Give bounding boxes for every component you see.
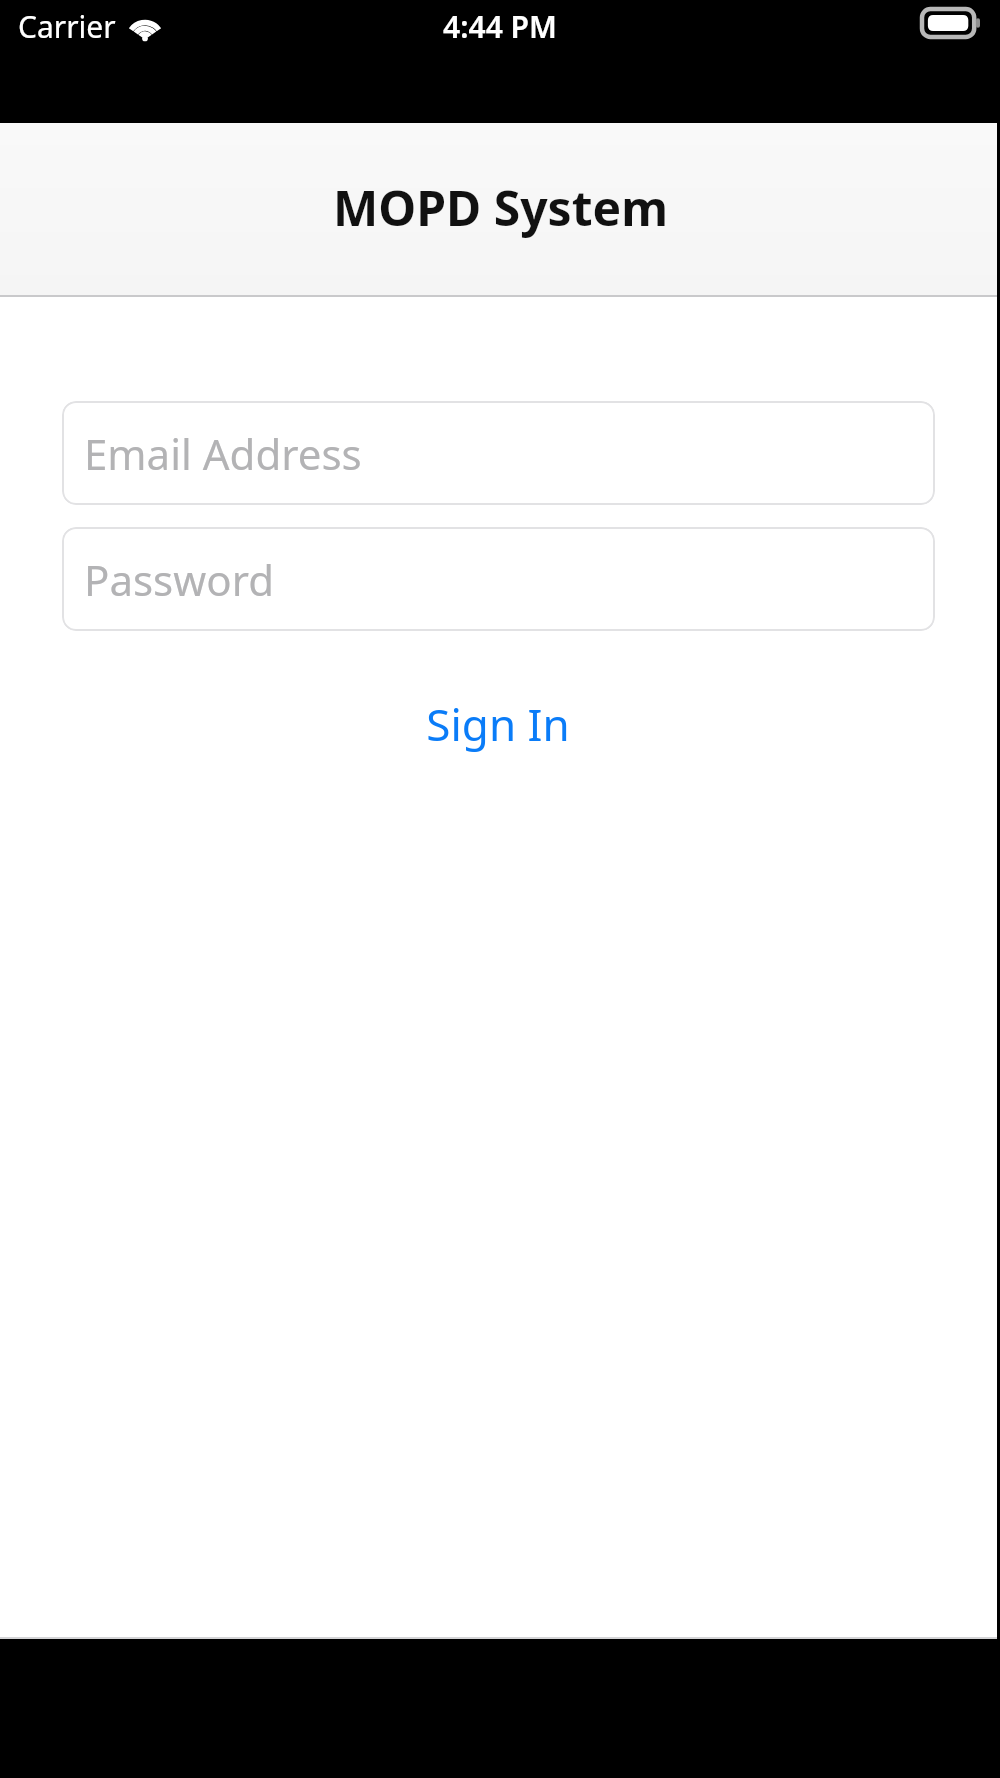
- other: Wi-Fi signal: [128, 14, 162, 40]
- staticText: Carrier: [18, 6, 116, 47]
- staticText: 4:44 PM: [443, 6, 557, 47]
- staticText: Password: [84, 551, 274, 608]
- staticText: Sign In: [426, 694, 570, 754]
- button[interactable]: Password: [62, 527, 935, 631]
- staticText: Email Address: [84, 425, 362, 482]
- button[interactable]: Sign In: [0, 679, 1000, 769]
- button[interactable]: Email Address: [62, 401, 935, 505]
- staticText: MOPD System: [333, 175, 668, 240]
- other: Battery full: [922, 9, 980, 37]
